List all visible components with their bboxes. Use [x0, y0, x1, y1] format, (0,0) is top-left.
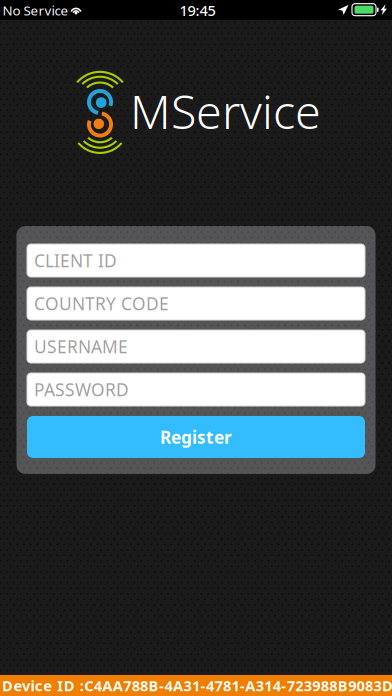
staticText: No Service: [2, 1, 68, 19]
staticText: 19:45: [179, 0, 215, 20]
button[interactable]: CLIENT ID: [27, 244, 365, 277]
staticText: PASSWORD: [34, 378, 129, 401]
staticText: Device ID :C4AA788B-4A31-4781-A314-72398…: [2, 676, 392, 695]
button[interactable]: COUNTRY CODE: [27, 287, 365, 320]
staticText: MService: [130, 80, 321, 142]
button[interactable]: USERNAME: [27, 330, 365, 363]
staticText: CLIENT ID: [34, 249, 117, 272]
button[interactable]: PASSWORD: [27, 373, 365, 406]
button[interactable]: Register: [27, 416, 365, 458]
staticText: Register: [160, 425, 232, 448]
staticText: USERNAME: [34, 335, 128, 358]
staticText: COUNTRY CODE: [34, 292, 169, 315]
